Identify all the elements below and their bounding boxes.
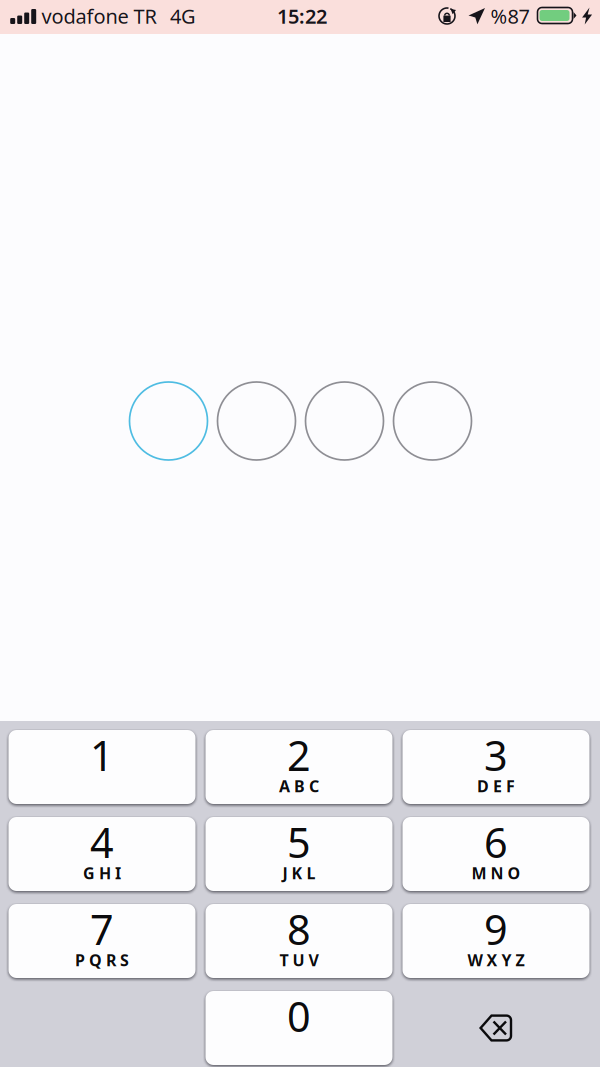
button[interactable]: 9 [402, 904, 589, 978]
button[interactable]: 5 [205, 817, 392, 891]
button[interactable]: 3 [402, 730, 589, 804]
staticText: 1 [90, 728, 114, 782]
staticText: W X Y Z [467, 949, 524, 971]
staticText: 8 [287, 902, 311, 956]
staticText: P Q R S [75, 949, 129, 971]
staticText: 5 [287, 815, 311, 869]
staticText: T U V [279, 949, 318, 971]
staticText: A B C [279, 775, 319, 797]
staticText: 4G [170, 3, 196, 29]
button[interactable]: 4 [8, 817, 195, 891]
staticText: J K L [282, 862, 315, 884]
staticText: G H I [83, 862, 121, 884]
staticText: D E F [477, 775, 515, 797]
button[interactable]: 2 [205, 730, 392, 804]
button[interactable]: 6 [402, 817, 589, 891]
button[interactable]: 1 [8, 730, 195, 804]
staticText: 2 [287, 728, 311, 782]
button[interactable]: 7 [8, 904, 195, 978]
button[interactable]: 8 [205, 904, 392, 978]
staticText: %87 [490, 3, 529, 29]
button[interactable]: Delete [402, 991, 589, 1065]
staticText: vodafone TR [41, 3, 156, 29]
staticText: 4 [90, 815, 114, 869]
staticText: 6 [484, 815, 508, 869]
staticText: M N O [471, 862, 520, 884]
staticText: 3 [484, 728, 508, 782]
staticText: 9 [484, 902, 508, 956]
staticText: 7 [90, 902, 114, 956]
button[interactable]: 0 [205, 991, 392, 1065]
staticText: 0 [287, 989, 311, 1043]
staticText: 15:22 [277, 3, 327, 29]
